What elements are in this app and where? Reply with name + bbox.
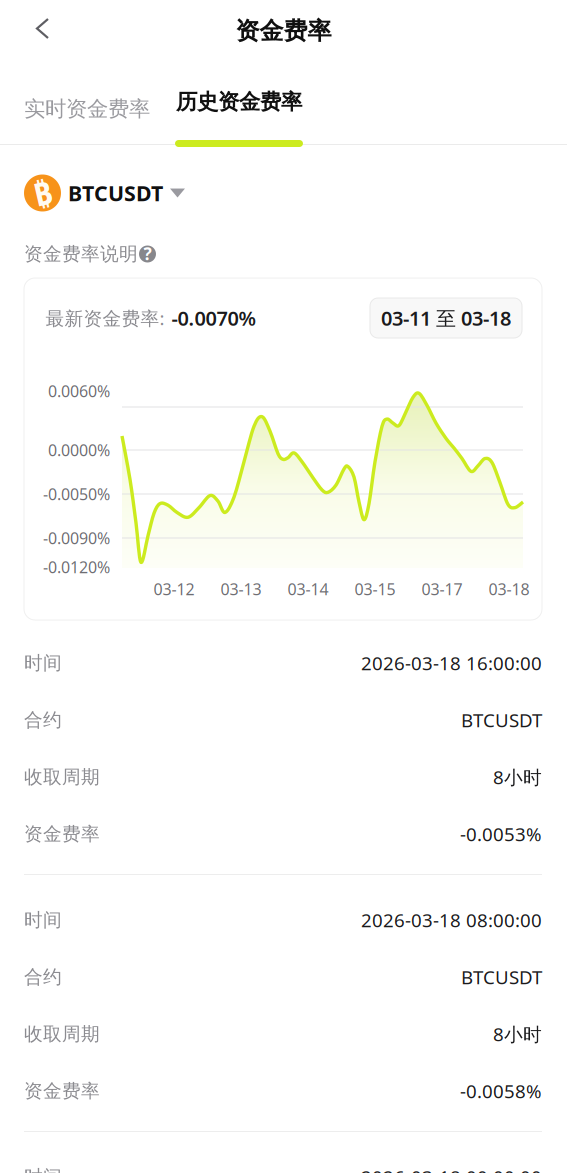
staticText: 时间 xyxy=(24,1165,62,1173)
staticText: BTCUSDT xyxy=(461,708,542,732)
staticText: 历史资金费率 xyxy=(176,89,302,115)
staticText: 03-14 xyxy=(287,578,328,600)
button[interactable]: 历史资金费率 xyxy=(175,72,303,152)
staticText: -0.0090% xyxy=(43,527,110,549)
staticText: 收取周期 xyxy=(24,1022,100,1045)
staticText: 8小时 xyxy=(493,1022,542,1046)
staticText: 03-15 xyxy=(354,578,395,600)
staticText: 03-11 至 03-18 xyxy=(381,305,511,331)
staticText: -0.0120% xyxy=(43,556,110,578)
staticText: 0.0000% xyxy=(48,439,110,461)
staticText: -0.0053% xyxy=(460,822,542,846)
staticText: 2026-03-18 16:00:00 xyxy=(361,651,542,675)
button[interactable]: 03-11 至 03-18 xyxy=(370,298,522,338)
staticText: 最新资金费率: xyxy=(45,306,164,330)
staticText: 合约 xyxy=(24,708,62,731)
staticText: 资金费率 xyxy=(24,822,100,845)
button[interactable]: ₿ xyxy=(24,168,224,218)
staticText: 时间 xyxy=(24,651,62,674)
staticText: BTCUSDT xyxy=(461,965,542,989)
staticText: 资金费率 xyxy=(235,16,331,46)
button[interactable]: 资金费率说明 xyxy=(24,234,184,274)
staticText: 8小时 xyxy=(493,765,542,789)
staticText: 收取周期 xyxy=(24,765,100,788)
staticText: 03-18 xyxy=(488,578,529,600)
staticText: 0.0060% xyxy=(48,380,110,402)
staticText: -0.0050% xyxy=(43,483,110,505)
button[interactable]: Back xyxy=(11,0,73,59)
staticText: BTCUSDT xyxy=(68,179,163,207)
staticText: 资金费率 xyxy=(24,1079,100,1102)
staticText: ? xyxy=(143,242,151,265)
staticText: 03-13 xyxy=(220,578,261,600)
button[interactable]: 实时资金费率 xyxy=(24,79,150,139)
staticText: 时间 xyxy=(24,908,62,931)
staticText: 2026-03-18 00:00:00 xyxy=(361,1165,542,1173)
staticText: -0.0058% xyxy=(460,1079,542,1103)
staticText: -0.0070% xyxy=(171,305,256,331)
staticText: 03-17 xyxy=(421,578,462,600)
staticText: 2026-03-18 08:00:00 xyxy=(361,908,542,932)
staticText: 03-12 xyxy=(153,578,194,600)
staticText: ₿ xyxy=(33,172,51,214)
staticText: 实时资金费率 xyxy=(24,96,150,122)
staticText: 合约 xyxy=(24,965,62,988)
staticText: 资金费率说明 xyxy=(24,242,138,265)
